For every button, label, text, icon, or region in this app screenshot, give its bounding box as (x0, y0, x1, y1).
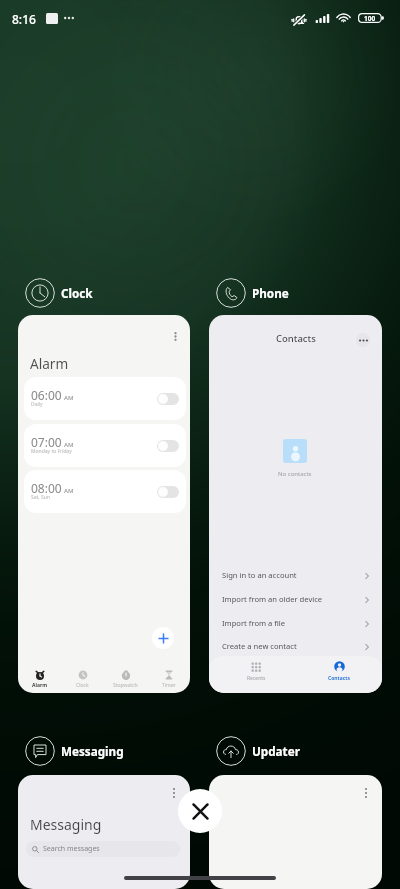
button[interactable]: More options (18, 775, 190, 889)
button[interactable]: Create a new contact (209, 634, 382, 658)
button[interactable]: More options (358, 785, 374, 801)
button[interactable]: Clock (25, 278, 93, 308)
staticText: Stopwatch (113, 682, 138, 689)
staticText: Alarm (32, 682, 48, 689)
button[interactable]: Close all apps (178, 789, 222, 833)
button[interactable]: Recents (236, 662, 276, 682)
button[interactable]: More options (209, 775, 382, 889)
button[interactable]: Stopwatch (104, 659, 147, 689)
staticText: Recents (247, 675, 266, 682)
button[interactable]: Updater (216, 736, 300, 766)
staticText: No contacts (278, 470, 312, 478)
button[interactable]: Search messages (26, 841, 180, 857)
staticText: Timer (162, 682, 176, 689)
staticText: Search messages (43, 844, 100, 854)
staticText: Contacts (276, 332, 316, 345)
staticText: Create a new contact (222, 641, 297, 651)
staticText: Alarm (30, 354, 69, 373)
button[interactable]: 06:00 (24, 377, 186, 420)
button[interactable]: Phone (216, 278, 289, 308)
staticText: Sat, Sun (31, 494, 50, 501)
button[interactable]: Clock (61, 659, 104, 689)
staticText: Import from a file (222, 618, 286, 628)
button[interactable]: 07:00 (24, 424, 186, 467)
staticText: AM (64, 441, 74, 449)
staticText: 08:00 (31, 480, 62, 496)
button[interactable]: Messaging (25, 736, 124, 766)
button[interactable]: More options (356, 333, 370, 347)
staticText: 100 (364, 14, 376, 23)
staticText: AM (64, 394, 74, 402)
button[interactable]: Toggle alarm 07:00 (157, 440, 179, 452)
staticText: Clock (61, 285, 93, 301)
staticText: Contacts (328, 675, 351, 682)
button[interactable]: Toggle alarm 06:00 (157, 393, 179, 405)
button[interactable]: Toggle alarm 08:00 (157, 486, 179, 498)
staticText: 8:16 (12, 11, 36, 27)
staticText: Monday to Friday (31, 448, 72, 455)
button[interactable]: Sign in to an account (209, 563, 382, 587)
staticText: Messaging (30, 815, 102, 834)
button[interactable]: Add alarm (152, 627, 174, 649)
button[interactable]: Import from a file (209, 611, 382, 635)
button[interactable]: More options (166, 785, 182, 801)
staticText: Phone (252, 285, 289, 301)
button[interactable]: 08:00 (24, 470, 186, 513)
staticText: 06:00 (31, 387, 62, 403)
staticText: AM (64, 487, 74, 495)
staticText: Messaging (61, 743, 124, 759)
staticText: Daily (31, 401, 43, 408)
button[interactable]: Timer (147, 659, 190, 689)
button[interactable]: Alarm (18, 659, 61, 689)
button[interactable]: Contacts (209, 315, 382, 693)
staticText: Clock (76, 682, 89, 689)
button[interactable]: More options (167, 328, 184, 345)
staticText: Import from an older device (222, 594, 323, 604)
button[interactable]: More options (18, 315, 190, 693)
button[interactable]: Import from an older device (209, 587, 382, 611)
staticText: 07:00 (31, 434, 62, 450)
button[interactable]: Contacts (319, 661, 359, 682)
staticText: Sign in to an account (222, 570, 297, 580)
staticText: Updater (252, 743, 300, 759)
